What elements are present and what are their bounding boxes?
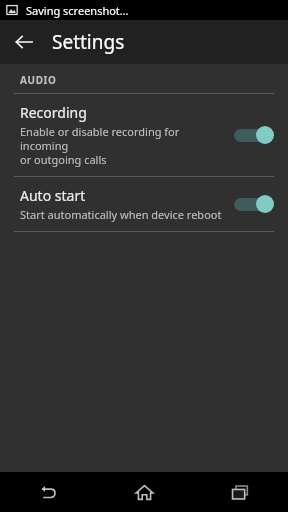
button[interactable]: Home (96, 472, 192, 512)
button[interactable]: Back (6, 24, 42, 60)
staticText: Start automatically when device reboot (20, 207, 222, 222)
button[interactable]: Back (0, 472, 96, 512)
button[interactable]: Toggle (232, 122, 274, 148)
staticText: Saving screenshot… (26, 3, 129, 18)
staticText: Enable or disable recording for incoming… (20, 124, 226, 167)
button[interactable]: Recording (0, 94, 288, 176)
staticText: Settings (52, 29, 125, 55)
staticText: AUDIO (20, 73, 57, 87)
staticText: Auto start (20, 186, 86, 205)
button[interactable]: Auto start (0, 177, 288, 231)
staticText: Recording (20, 103, 87, 122)
button[interactable]: Recent apps (192, 472, 288, 512)
button[interactable]: Toggle (232, 191, 274, 217)
